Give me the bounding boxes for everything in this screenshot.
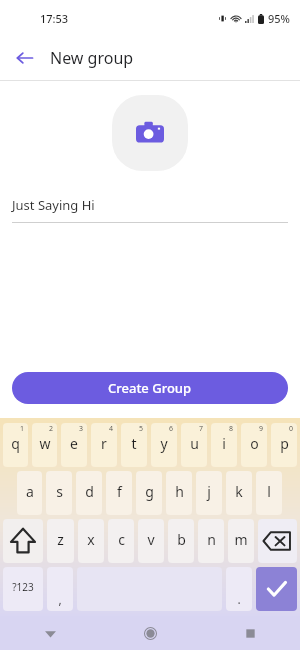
staticText: z <box>57 530 64 549</box>
staticText: k <box>235 482 243 501</box>
staticText: w <box>39 434 51 453</box>
button[interactable]: v <box>138 519 164 563</box>
button[interactable]: ?123 <box>3 567 43 611</box>
staticText: Just Saying Hi <box>12 196 95 214</box>
button[interactable]: a <box>17 471 42 515</box>
button[interactable]: c <box>108 519 134 563</box>
staticText: 17:53 <box>40 11 69 26</box>
staticText: Create Group <box>108 379 192 397</box>
staticText: l <box>267 482 271 501</box>
button[interactable]: x <box>78 519 104 563</box>
staticText: e <box>70 434 78 453</box>
button[interactable]: Shift <box>3 519 43 563</box>
button[interactable]: Back <box>8 41 42 75</box>
button[interactable]: l <box>256 471 282 515</box>
staticText: New group <box>50 47 134 69</box>
button[interactable]: t <box>121 423 147 467</box>
button[interactable]: f <box>106 471 132 515</box>
staticText: n <box>207 530 216 549</box>
button[interactable]: . <box>226 567 252 611</box>
button[interactable]: s <box>46 471 72 515</box>
button[interactable]: p <box>271 423 297 467</box>
staticText: g <box>145 482 154 501</box>
staticText: y <box>160 434 168 453</box>
staticText: v <box>147 530 155 549</box>
staticText: a <box>26 482 34 501</box>
staticText: 95% <box>268 11 290 26</box>
button[interactable]: Home <box>100 616 200 650</box>
staticText: 6 <box>169 424 174 434</box>
button[interactable]: Add group photo <box>112 95 188 171</box>
button[interactable]: n <box>198 519 224 563</box>
button[interactable]: , <box>47 567 73 611</box>
button[interactable]: u <box>181 423 207 467</box>
button[interactable]: i <box>211 423 237 467</box>
staticText: h <box>175 482 184 501</box>
button[interactable]: Recent apps <box>200 616 300 650</box>
button[interactable]: z <box>47 519 74 563</box>
staticText: , <box>58 591 62 607</box>
staticText: t <box>131 434 137 453</box>
staticText: 0 <box>289 424 294 434</box>
staticText: q <box>11 434 20 453</box>
button[interactable]: g <box>136 471 162 515</box>
button[interactable]: y <box>151 423 177 467</box>
button[interactable]: e <box>61 423 87 467</box>
button[interactable]: m <box>228 519 254 563</box>
button[interactable]: d <box>76 471 102 515</box>
staticText: 8 <box>229 424 234 434</box>
staticText: m <box>234 530 248 549</box>
staticText: i <box>222 434 226 453</box>
button[interactable]: q <box>3 423 28 467</box>
staticText: r <box>101 434 107 453</box>
staticText: 1 <box>20 424 25 434</box>
staticText: f <box>117 482 122 501</box>
button[interactable]: w <box>32 423 57 467</box>
button[interactable]: o <box>241 423 267 467</box>
button[interactable]: Back <box>0 616 100 650</box>
staticText: 5 <box>139 424 144 434</box>
button[interactable]: k <box>226 471 252 515</box>
button[interactable]: Enter <box>256 567 297 611</box>
staticText: s <box>56 482 63 501</box>
button[interactable]: r <box>91 423 117 467</box>
staticText: j <box>207 482 211 501</box>
button[interactable]: Backspace <box>258 519 297 563</box>
staticText: 3 <box>79 424 84 434</box>
staticText: 2 <box>49 424 54 434</box>
staticText: x <box>87 530 95 549</box>
staticText: o <box>250 434 259 453</box>
button[interactable]: h <box>166 471 192 515</box>
button[interactable]: Create Group <box>12 372 288 404</box>
staticText: 9 <box>259 424 264 434</box>
staticText: 4 <box>109 424 114 434</box>
staticText: c <box>118 530 125 549</box>
button[interactable]: j <box>196 471 222 515</box>
staticText: 7 <box>199 424 204 434</box>
button[interactable]: b <box>168 519 194 563</box>
staticText: . <box>237 591 241 607</box>
staticText: p <box>280 434 289 453</box>
staticText: b <box>177 530 186 549</box>
staticText: d <box>85 482 94 501</box>
staticText: u <box>190 434 199 453</box>
staticText: ?123 <box>12 580 34 594</box>
